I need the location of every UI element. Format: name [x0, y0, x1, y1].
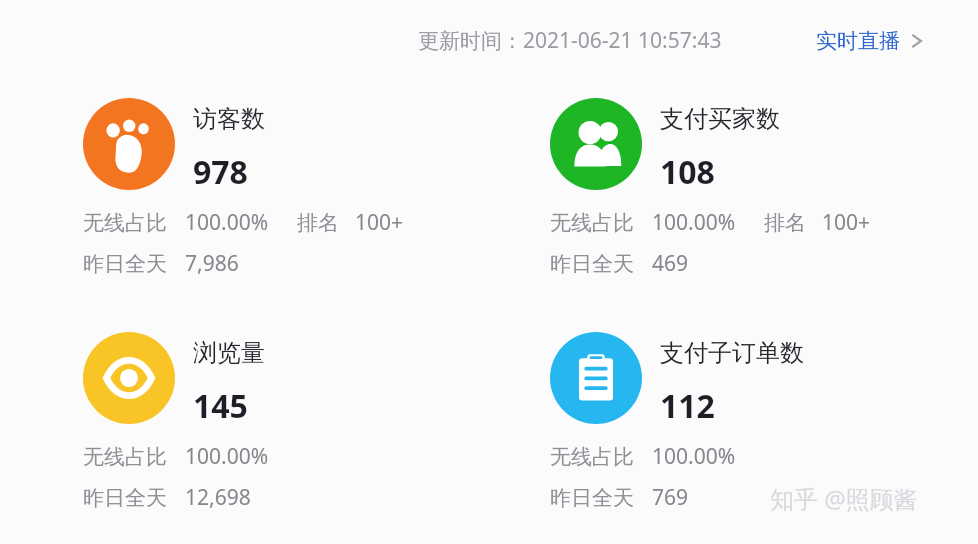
staticText: 浏览量: [193, 338, 265, 368]
staticText: 100.00%: [185, 442, 269, 471]
staticText: 支付买家数: [660, 104, 780, 134]
button[interactable]: 实时直播: [812, 24, 928, 58]
staticText: 978: [193, 150, 248, 194]
staticText: 769: [652, 483, 689, 512]
staticText: 实时直播: [816, 28, 900, 54]
staticText: 无线占比: [550, 444, 634, 470]
staticText: 100+: [355, 208, 404, 237]
staticText: 无线占比: [83, 210, 167, 236]
staticText: 108: [660, 150, 715, 194]
staticText: 昨日全天: [550, 251, 634, 277]
staticText: 排名: [297, 210, 339, 236]
staticText: 100.00%: [652, 208, 736, 237]
staticText: 100.00%: [652, 442, 736, 471]
staticText: 112: [660, 384, 715, 428]
staticText: 100.00%: [185, 208, 269, 237]
staticText: 无线占比: [83, 444, 167, 470]
staticText: 12,698: [185, 483, 251, 512]
staticText: 更新时间：: [418, 28, 523, 54]
staticText: 2021-06-21 10:57:43: [523, 26, 722, 55]
staticText: 昨日全天: [83, 251, 167, 277]
staticText: 145: [193, 384, 248, 428]
button[interactable]: 访客数: [83, 98, 175, 190]
staticText: 昨日全天: [83, 485, 167, 511]
staticText: 昨日全天: [550, 485, 634, 511]
button[interactable]: 支付买家数: [550, 98, 642, 190]
staticText: 排名: [764, 210, 806, 236]
staticText: 知乎 @照顾酱: [770, 482, 918, 515]
button[interactable]: 支付子订单数: [550, 332, 642, 424]
staticText: 7,986: [185, 249, 239, 278]
staticText: 支付子订单数: [660, 338, 804, 368]
staticText: 100+: [822, 208, 871, 237]
button[interactable]: 浏览量: [83, 332, 175, 424]
staticText: 469: [652, 249, 689, 278]
staticText: 访客数: [193, 104, 265, 134]
staticText: 无线占比: [550, 210, 634, 236]
